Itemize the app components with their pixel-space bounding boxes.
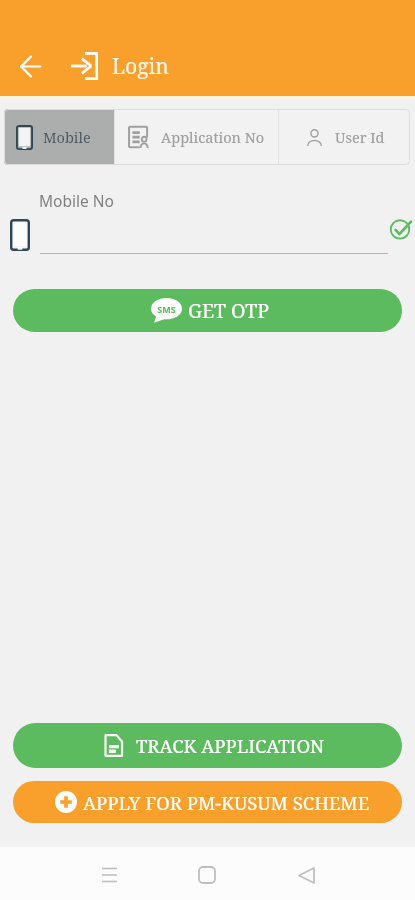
- button[interactable]: User Id: [279, 109, 410, 165]
- button[interactable]: TRACK APPLICATION: [13, 723, 402, 768]
- staticText: APPLY FOR PM-KUSUM SCHEME: [83, 790, 370, 815]
- button[interactable]: Back: [8, 44, 52, 88]
- staticText: GET OTP: [188, 297, 269, 324]
- staticText: Login: [112, 52, 169, 81]
- button[interactable]: Back: [282, 851, 330, 899]
- staticText: Application No: [161, 127, 265, 147]
- staticText: TRACK APPLICATION: [136, 733, 325, 758]
- staticText: Mobile: [43, 127, 91, 147]
- button[interactable]: SMS: [13, 289, 402, 332]
- staticText: Mobile No: [39, 190, 114, 211]
- staticText: User Id: [335, 127, 385, 147]
- button[interactable]: Mobile: [4, 109, 114, 165]
- button[interactable]: APPLY FOR PM-KUSUM SCHEME: [13, 781, 402, 823]
- button[interactable]: Home: [183, 851, 231, 899]
- button[interactable]: Recents: [85, 851, 133, 899]
- button[interactable]: Application No: [115, 109, 278, 165]
- staticText: SMS: [157, 303, 176, 315]
